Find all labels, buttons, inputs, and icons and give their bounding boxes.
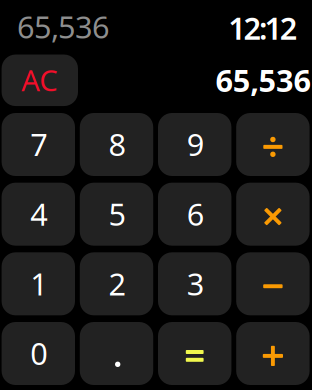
button[interactable]: 0 [2,322,75,385]
staticText: 5 [108,193,126,234]
button[interactable]: 6 [158,183,231,246]
button[interactable]: 3 [158,252,231,315]
button[interactable]: 5 [80,183,153,246]
staticText: AC [21,60,58,99]
button[interactable]: Subtract [236,252,310,315]
button[interactable]: 7 [2,113,75,176]
button[interactable]: 4 [2,183,75,246]
staticText: 0 [30,333,48,373]
button[interactable]: 9 [158,113,231,176]
button[interactable]: Multiply [236,183,310,246]
button[interactable]: Decimal point [80,322,153,385]
button[interactable]: 8 [80,113,153,176]
staticText: 1 [30,263,48,304]
staticText: 65,536 [17,6,110,47]
button[interactable]: AC [2,54,78,106]
staticText: 3 [187,263,205,304]
button[interactable]: 1 [2,252,75,315]
staticText: 2 [108,263,126,304]
button[interactable]: Equals [158,322,231,385]
staticText: 4 [30,193,48,234]
staticText: 7 [30,124,48,164]
staticText: 6 [187,193,205,234]
button[interactable]: Add [236,322,310,385]
button[interactable]: Divide [236,113,310,176]
staticText: 12:12 [228,7,298,48]
button[interactable]: 2 [80,252,153,315]
staticText: 8 [108,124,126,164]
staticText: 65,536 [215,60,311,100]
staticText: 9 [187,124,205,164]
